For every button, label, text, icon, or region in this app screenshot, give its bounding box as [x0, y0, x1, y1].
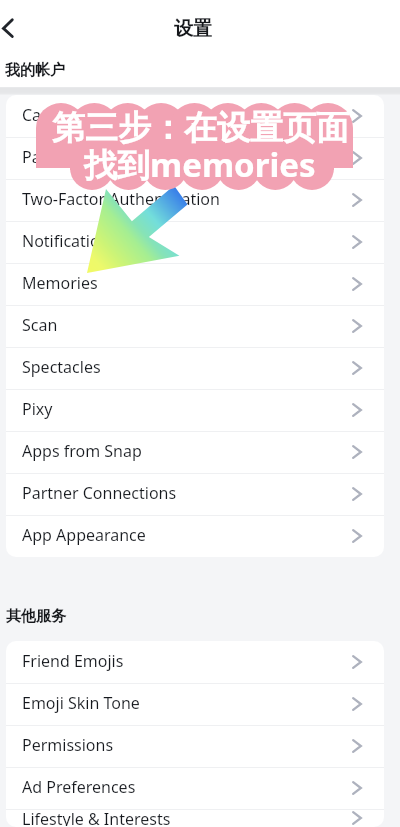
staticText: Partner Connections [22, 482, 352, 504]
staticText: Memories [22, 272, 352, 294]
staticText: Scan [22, 314, 352, 336]
staticText: Lifestyle & Interests [22, 808, 352, 826]
staticText: 其他服务 [6, 607, 66, 626]
button[interactable]: Lifestyle & Interests [6, 809, 384, 827]
staticText: Password [22, 146, 352, 168]
staticText: Friend Emojis [22, 650, 352, 672]
staticText: 找到memories [84, 142, 316, 187]
button[interactable]: Notifications [6, 221, 384, 263]
button[interactable]: Apps from Snap [6, 431, 384, 473]
button[interactable]: Memories [6, 263, 384, 305]
staticText: 设置 [174, 17, 212, 41]
staticText: App Appearance [22, 524, 352, 546]
staticText: Permissions [22, 734, 352, 756]
button[interactable]: Scan [6, 305, 384, 347]
staticText: Spectacles [22, 356, 352, 378]
button[interactable]: Partner Connections [6, 473, 384, 515]
staticText: 第三步：在设置页面 [52, 107, 349, 149]
button[interactable]: Emoji Skin Tone [6, 683, 384, 725]
staticText: Notifications [22, 230, 352, 252]
staticText: Camera [22, 104, 352, 126]
staticText: 我的帐户 [5, 61, 65, 80]
button[interactable]: Two-Factor Authentication [6, 179, 384, 221]
button[interactable]: Pixy [6, 389, 384, 431]
button[interactable]: Friend Emojis [6, 641, 384, 683]
staticText: Pixy [22, 398, 352, 420]
staticText: Apps from Snap [22, 440, 352, 462]
button[interactable]: App Appearance [6, 515, 384, 557]
staticText: Two-Factor Authentication [22, 188, 352, 210]
button[interactable]: Password [6, 137, 384, 179]
button[interactable]: Ad Preferences [6, 767, 384, 809]
button[interactable]: Camera [6, 95, 384, 137]
staticText: Emoji Skin Tone [22, 692, 352, 714]
staticText: Ad Preferences [22, 776, 352, 798]
button[interactable]: Spectacles [6, 347, 384, 389]
button[interactable]: Back [0, 10, 30, 46]
button[interactable]: Permissions [6, 725, 384, 767]
